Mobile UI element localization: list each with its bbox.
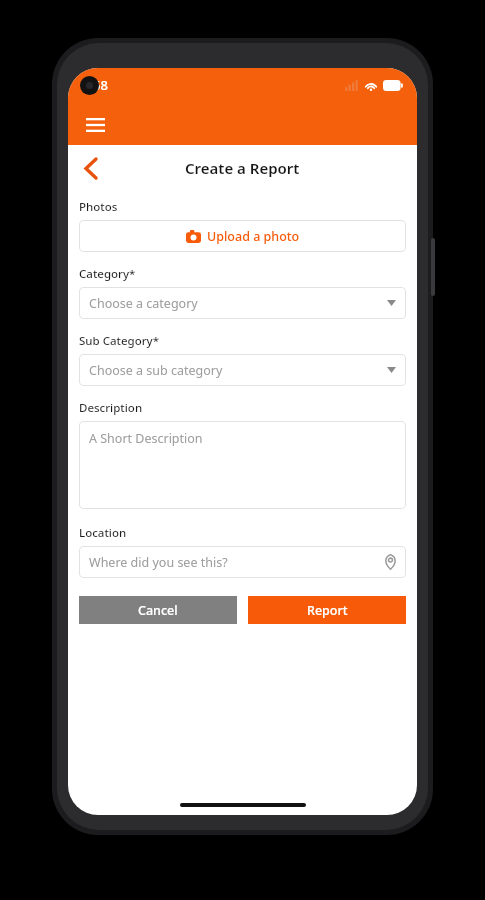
staticText: 1:58 (82, 76, 108, 94)
button[interactable]: Choose a sub category (79, 354, 406, 386)
button[interactable]: A Short Description (79, 421, 406, 509)
button[interactable]: Where did you see this? (79, 546, 406, 578)
staticText: Where did you see this? (89, 554, 228, 571)
staticText: Sub Category* (79, 333, 159, 349)
staticText: Choose a category (89, 295, 198, 312)
staticText: Location (79, 525, 127, 541)
button[interactable]: Report (248, 596, 406, 624)
staticText: Upload a photo (207, 228, 300, 245)
button[interactable]: Cancel (79, 596, 237, 624)
staticText: Photos (79, 199, 118, 215)
staticText: Cancel (138, 602, 178, 619)
staticText: A Short Description (89, 430, 203, 447)
staticText: Description (79, 400, 143, 416)
staticText: Choose a sub category (89, 362, 223, 379)
button[interactable]: Upload a photo (79, 220, 406, 252)
button[interactable]: Back (72, 149, 110, 187)
staticText: Report (307, 602, 348, 619)
button[interactable]: Choose a category (79, 287, 406, 319)
button[interactable]: Menu (76, 106, 114, 144)
staticText: Create a Report (185, 158, 300, 178)
staticText: Category* (79, 266, 136, 282)
